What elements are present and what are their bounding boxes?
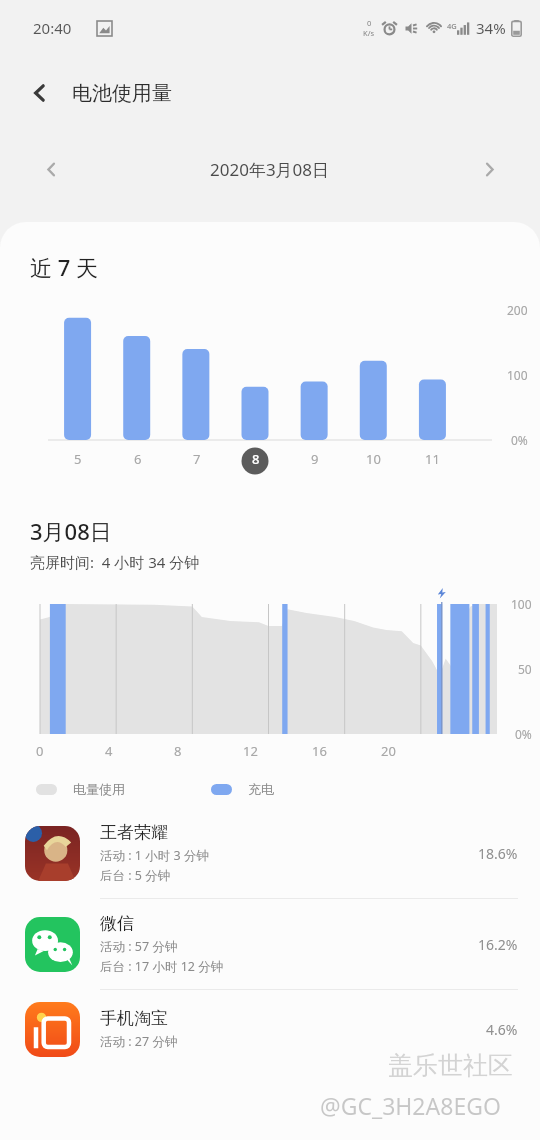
button[interactable]: Back xyxy=(16,69,64,117)
button[interactable]: 微信 xyxy=(0,899,540,989)
staticText: 100 xyxy=(507,367,528,383)
staticText: 4G xyxy=(447,21,457,31)
staticText: 后台 : 5 分钟 xyxy=(100,867,171,884)
staticText: 12 xyxy=(243,742,258,760)
staticText: @GC_3H2A8EGO xyxy=(320,1090,501,1121)
button[interactable]: Previous day xyxy=(26,144,76,194)
staticText: 2020年3月08日 xyxy=(210,158,330,181)
staticText: 50 xyxy=(518,661,532,677)
staticText: 11 xyxy=(425,450,440,468)
staticText: 18.6% xyxy=(478,844,518,863)
staticText: 16.2% xyxy=(478,935,518,954)
button[interactable]: 王者荣耀 xyxy=(0,808,540,898)
staticText: 充电 xyxy=(248,781,274,797)
staticText: 后台 : 17 小时 12 分钟 xyxy=(100,958,224,975)
staticText: 5 xyxy=(74,450,82,468)
staticText: 9 xyxy=(311,450,319,468)
staticText: 0% xyxy=(511,432,528,448)
staticText: 100 xyxy=(511,596,532,612)
staticText: 200 xyxy=(507,302,528,318)
staticText: 4 xyxy=(105,742,113,760)
staticText: 手机淘宝 xyxy=(100,1008,168,1029)
staticText: 盖乐世社区 xyxy=(388,1050,513,1081)
staticText: K/s xyxy=(363,28,375,38)
staticText: 亮屏时间: 4 小时 34 分钟 xyxy=(30,552,200,572)
staticText: 王者荣耀 xyxy=(100,822,168,843)
staticText: 4.6% xyxy=(486,1020,518,1039)
staticText: 电量使用 xyxy=(73,781,125,797)
staticText: 活动 : 27 分钟 xyxy=(100,1033,178,1050)
staticText: 7 xyxy=(193,450,201,468)
staticText: 20 xyxy=(381,742,396,760)
staticText: 34% xyxy=(476,18,506,38)
button[interactable]: 手机淘宝 xyxy=(0,990,540,1068)
staticText: 微信 xyxy=(100,913,134,934)
button[interactable]: Next day xyxy=(464,144,514,194)
staticText: 活动 : 57 分钟 xyxy=(100,938,178,955)
staticText: 8 xyxy=(252,450,260,468)
staticText: 6 xyxy=(134,450,142,468)
staticText: 3月08日 xyxy=(30,516,112,546)
staticText: 0% xyxy=(515,726,532,742)
staticText: 20:40 xyxy=(33,18,72,38)
staticText: 0 xyxy=(36,742,44,760)
staticText: 8 xyxy=(174,742,182,760)
staticText: 电池使用量 xyxy=(72,81,172,106)
staticText: 近 7 天 xyxy=(30,252,99,282)
staticText: 16 xyxy=(312,742,327,760)
staticText: 0 xyxy=(367,18,372,28)
staticText: 活动 : 1 小时 3 分钟 xyxy=(100,847,209,864)
staticText: 10 xyxy=(366,450,381,468)
